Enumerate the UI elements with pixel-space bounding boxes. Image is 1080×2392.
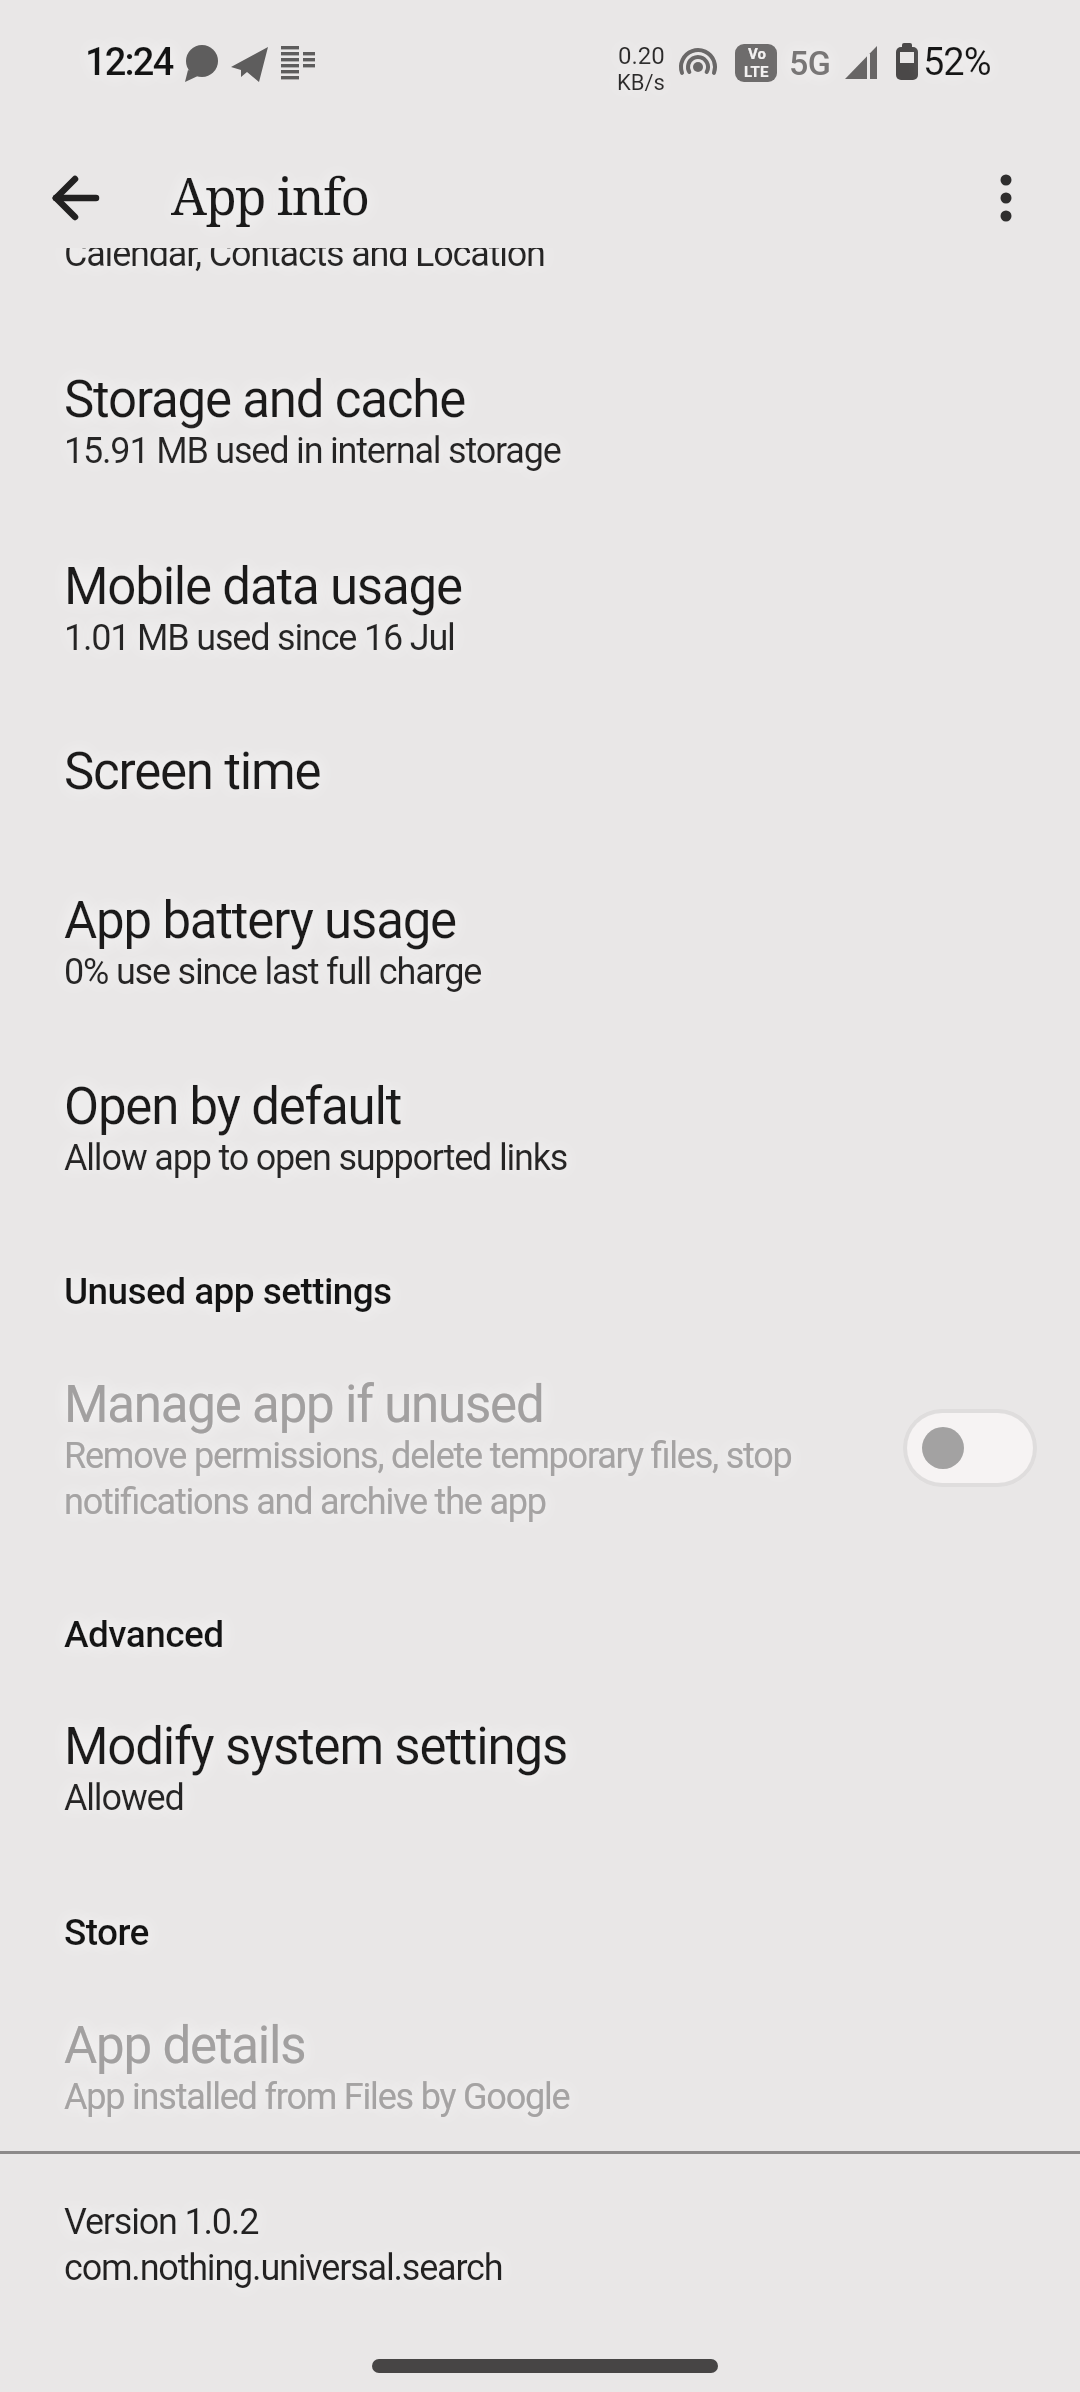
staticText: 12:24	[85, 40, 173, 85]
staticText: 1.01 MB used since 16 Jul	[64, 617, 455, 659]
staticText: 0% use since last full charge	[64, 951, 482, 993]
button[interactable]: Modify system settings	[0, 1701, 1080, 1835]
staticText: Mobile data usage	[64, 557, 462, 617]
staticText: Modify system settings	[64, 1717, 568, 1777]
staticText: Allow app to open supported links	[64, 1137, 568, 1179]
staticText: KB/s	[617, 70, 665, 96]
staticText: 52%	[923, 40, 991, 85]
staticText: 15.91 MB used in internal storage	[64, 430, 561, 472]
staticText: App installed from Files by Google	[64, 2076, 570, 2118]
staticText: App details	[64, 2016, 306, 2076]
button[interactable]: Manage app if unused	[0, 1359, 1080, 1538]
staticText: 5G	[789, 43, 831, 83]
staticText: Advanced	[64, 1613, 224, 1656]
button[interactable]	[966, 158, 1046, 238]
button[interactable]: Screen time	[0, 726, 1080, 818]
staticText: App info	[171, 160, 369, 229]
button[interactable]: Mobile data usage	[0, 541, 1080, 675]
button[interactable]	[903, 1409, 1037, 1487]
staticText: Manage app if unused	[64, 1375, 544, 1435]
button[interactable]: App battery usage	[0, 875, 1080, 1009]
staticText: Unused app settings	[64, 1270, 392, 1313]
staticText: Store	[64, 1911, 149, 1954]
button[interactable]: App details	[0, 2000, 1080, 2134]
button[interactable]	[38, 160, 114, 236]
staticText: Calendar, Contacts and Location	[64, 233, 545, 275]
staticText: LTE	[744, 63, 769, 81]
staticText: Allowed	[64, 1777, 184, 1819]
staticText: Open by default	[64, 1077, 402, 1137]
staticText: Screen time	[64, 742, 321, 802]
staticText: Vo	[748, 45, 766, 63]
staticText: 0.20	[618, 42, 665, 70]
staticText: Storage and cache	[64, 370, 466, 430]
button[interactable]: Storage and cache	[0, 354, 1080, 488]
staticText: Version 1.0.2 com.nothing.universal.sear…	[64, 2201, 503, 2288]
staticText: App battery usage	[64, 891, 456, 951]
button[interactable]: Open by default	[0, 1061, 1080, 1195]
staticText: Remove permissions, delete temporary fil…	[64, 1435, 792, 1522]
